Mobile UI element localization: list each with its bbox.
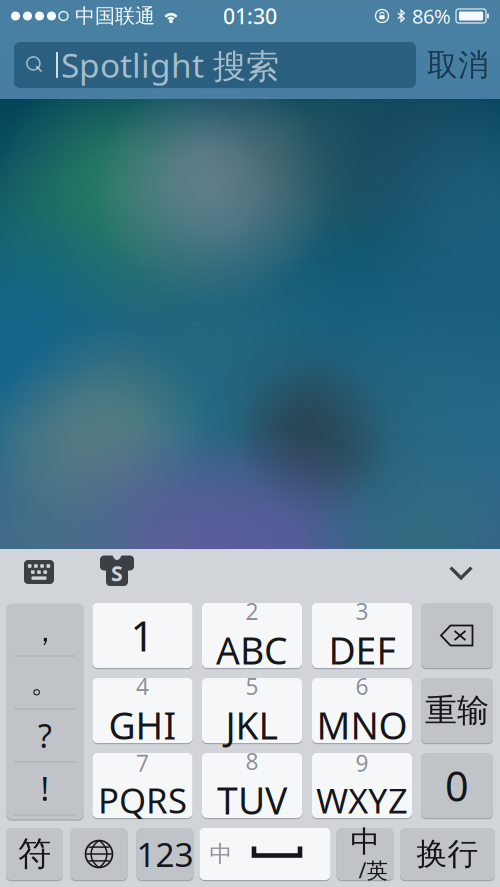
- staticText: ，: [30, 613, 59, 649]
- staticText: 符: [18, 833, 51, 874]
- staticText: 中: [350, 824, 379, 860]
- staticText: 5: [245, 671, 258, 701]
- staticText: PQRS: [98, 777, 187, 823]
- staticText: DEF: [328, 625, 395, 675]
- button[interactable]: 1: [92, 602, 192, 669]
- staticText: 7: [136, 748, 149, 778]
- staticText: 2: [245, 596, 258, 626]
- staticText: 8: [245, 746, 258, 776]
- staticText: 0: [445, 758, 469, 813]
- button[interactable]: 8: [202, 752, 302, 819]
- staticText: 中: [209, 840, 232, 868]
- button[interactable]: 换行: [400, 827, 495, 881]
- staticText: WXYZ: [316, 777, 408, 823]
- staticText: 6: [355, 671, 368, 701]
- button[interactable]: 2: [202, 602, 302, 669]
- staticText: 中国联通: [75, 4, 155, 28]
- staticText: Spotlight 搜索: [61, 43, 279, 87]
- button[interactable]: 中: [336, 827, 393, 881]
- button[interactable]: Keyboard theme: [100, 555, 134, 586]
- button[interactable]: Delete: [421, 602, 493, 669]
- staticText: /英: [358, 856, 387, 884]
- staticText: GHI: [108, 700, 176, 750]
- button[interactable]: 4: [92, 677, 192, 744]
- staticText: TUV: [217, 775, 287, 825]
- button[interactable]: ，: [6, 602, 84, 820]
- button[interactable]: 3: [312, 602, 412, 669]
- button[interactable]: 6: [312, 677, 412, 744]
- button[interactable]: 取消: [416, 42, 500, 88]
- staticText: 01:30: [223, 2, 277, 30]
- button[interactable]: Spotlight 搜索: [14, 42, 416, 88]
- staticText: 123: [136, 832, 193, 876]
- staticText: 换行: [416, 835, 478, 873]
- button[interactable]: Switch keyboard: [70, 827, 127, 881]
- staticText: 。: [30, 664, 59, 700]
- staticText: !: [40, 767, 49, 810]
- button[interactable]: 123: [136, 827, 193, 881]
- button[interactable]: Hide keyboard: [449, 566, 473, 580]
- button[interactable]: 7: [92, 752, 192, 819]
- staticText: S: [111, 559, 123, 587]
- button[interactable]: 9: [312, 752, 412, 819]
- staticText: 取消: [427, 46, 489, 84]
- staticText: 重输: [425, 691, 489, 730]
- button[interactable]: Keyboard settings: [24, 560, 54, 584]
- staticText: 4: [136, 671, 149, 701]
- button[interactable]: 重输: [421, 677, 493, 744]
- staticText: 86%: [412, 3, 451, 29]
- staticText: 9: [355, 748, 368, 778]
- button[interactable]: 5: [202, 677, 302, 744]
- staticText: MNO: [316, 700, 407, 750]
- staticText: ABC: [216, 625, 288, 675]
- staticText: 3: [355, 596, 368, 626]
- staticText: JKL: [225, 700, 278, 750]
- staticText: ?: [38, 714, 52, 757]
- button[interactable]: 符: [6, 827, 63, 881]
- staticText: 1: [130, 608, 154, 663]
- button[interactable]: Space: [199, 827, 330, 881]
- button[interactable]: 0: [421, 752, 493, 819]
